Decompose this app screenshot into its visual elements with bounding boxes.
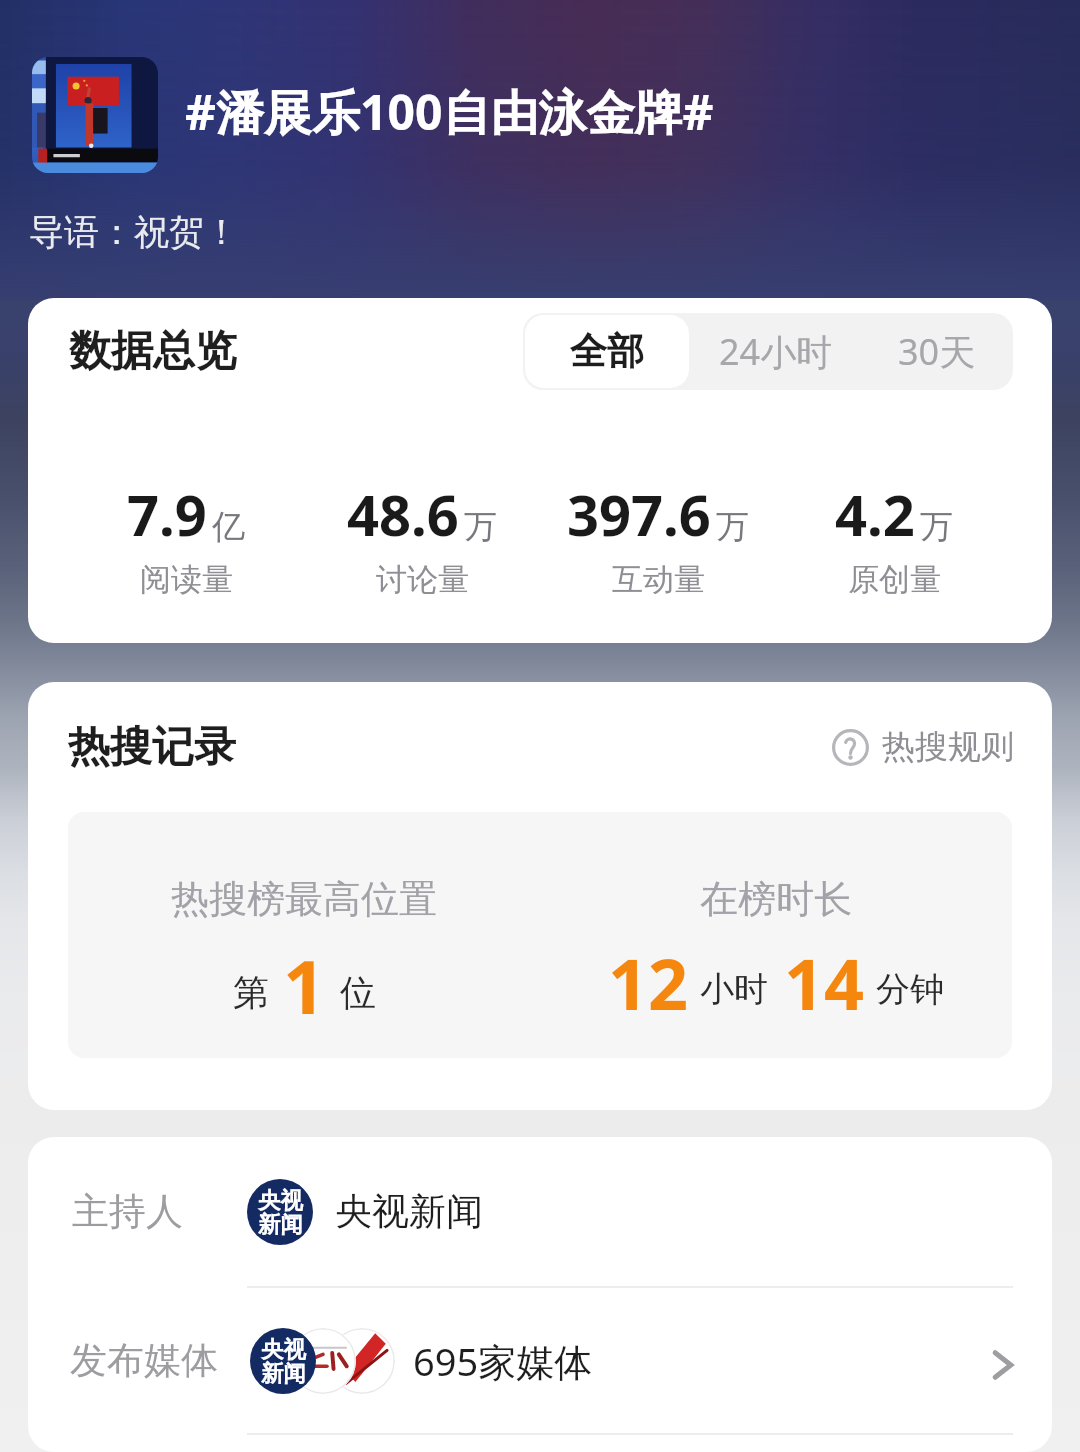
- staticText: #潘展乐100自由泳金牌#: [185, 79, 714, 145]
- staticText: 48.6: [347, 476, 459, 552]
- staticText: 热搜榜最高位置: [171, 875, 437, 923]
- staticText: 亿: [212, 506, 245, 548]
- staticText: 第: [233, 970, 269, 1015]
- other: More media: [989, 1351, 1017, 1379]
- staticText: 小时: [700, 968, 768, 1011]
- staticText: 分钟: [876, 968, 944, 1011]
- staticText: 位: [340, 970, 376, 1015]
- other: Topic cover image: [32, 57, 158, 173]
- staticText: 互动量: [612, 560, 705, 599]
- staticText: 央视 新闻: [258, 1186, 303, 1238]
- staticText: 发布媒体: [70, 1337, 218, 1384]
- staticText: 14: [784, 935, 865, 1030]
- staticText: 导语：祝贺！: [29, 210, 239, 254]
- staticText: 热搜规则: [882, 726, 1014, 768]
- staticText: 主持人: [72, 1188, 183, 1235]
- staticText: 397.6: [567, 476, 711, 552]
- button[interactable]: 主持人: [28, 1137, 1052, 1286]
- staticText: 全部: [570, 328, 644, 375]
- staticText: 央视新闻: [335, 1188, 483, 1235]
- button[interactable]: 24小时: [691, 313, 861, 390]
- staticText: 央视 新闻: [261, 1335, 306, 1387]
- button[interactable]: Topic cover image: [0, 54, 1080, 170]
- button[interactable]: 热搜规则: [832, 726, 1052, 768]
- staticText: 4.2: [835, 476, 915, 552]
- staticText: 12: [608, 935, 689, 1030]
- staticText: 万: [464, 506, 497, 548]
- staticText: 讨论量: [376, 560, 469, 599]
- button[interactable]: 30天: [861, 313, 1013, 390]
- staticText: 7.9: [127, 476, 207, 552]
- staticText: 数据总览: [69, 325, 237, 378]
- staticText: 阅读量: [140, 560, 233, 599]
- staticText: 万: [716, 506, 749, 548]
- staticText: 30天: [898, 327, 976, 376]
- staticText: 1: [283, 935, 326, 1036]
- staticText: 695家媒体: [413, 1335, 593, 1387]
- staticText: 万: [920, 506, 953, 548]
- button[interactable]: 发布媒体: [28, 1288, 1052, 1433]
- staticText: 热搜记录: [68, 721, 236, 774]
- staticText: 原创量: [848, 560, 941, 599]
- staticText: 在榜时长: [700, 875, 852, 923]
- button[interactable]: 全部: [525, 315, 689, 388]
- staticText: 24小时: [719, 327, 833, 376]
